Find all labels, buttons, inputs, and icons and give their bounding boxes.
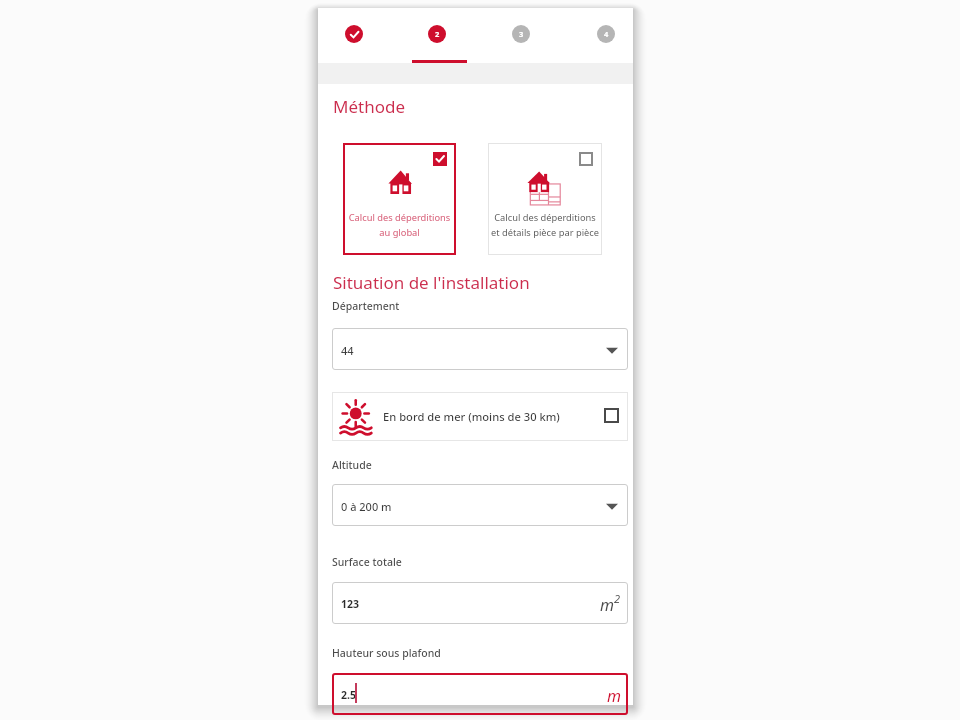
button[interactable]: En bord de mer (moins de 30 km) xyxy=(332,392,628,441)
button[interactable]: 44 xyxy=(332,328,628,370)
staticText: m xyxy=(607,685,622,707)
staticText: m xyxy=(600,594,615,616)
staticText: En bord de mer (moins de 30 km) xyxy=(383,409,560,424)
button[interactable]: Step 3 xyxy=(479,8,563,63)
staticText: Méthode xyxy=(333,95,405,118)
staticText: Calcul des déperditions et détails pièce… xyxy=(491,211,599,239)
staticText: 123 xyxy=(341,597,360,611)
button[interactable]: Calcul des déperditions au global xyxy=(343,143,456,255)
staticText: Hauteur sous plafond xyxy=(332,646,441,660)
button[interactable]: 0 à 200 m xyxy=(332,484,628,526)
staticText: Surface totale xyxy=(332,555,402,569)
button[interactable]: Step 4 xyxy=(564,8,648,63)
button[interactable]: 2.5 xyxy=(332,673,628,715)
staticText: 4 xyxy=(604,29,609,39)
staticText: 2 xyxy=(614,591,621,606)
staticText: Situation de l'installation xyxy=(333,271,530,294)
button[interactable]: 123 xyxy=(332,582,628,624)
staticText: 3 xyxy=(519,29,524,39)
button[interactable]: Step 2 xyxy=(395,8,479,63)
staticText: Calcul des déperditions au global xyxy=(346,211,453,239)
staticText: Département xyxy=(332,299,400,313)
staticText: Altitude xyxy=(332,458,372,472)
staticText: 44 xyxy=(341,343,354,358)
staticText: 0 à 200 m xyxy=(341,499,392,514)
button[interactable]: Calcul des déperditions et détails pièce… xyxy=(488,143,602,255)
staticText: 2 xyxy=(435,29,440,39)
staticText: 2.5 xyxy=(341,688,356,702)
button[interactable]: Step 1 xyxy=(312,8,396,63)
